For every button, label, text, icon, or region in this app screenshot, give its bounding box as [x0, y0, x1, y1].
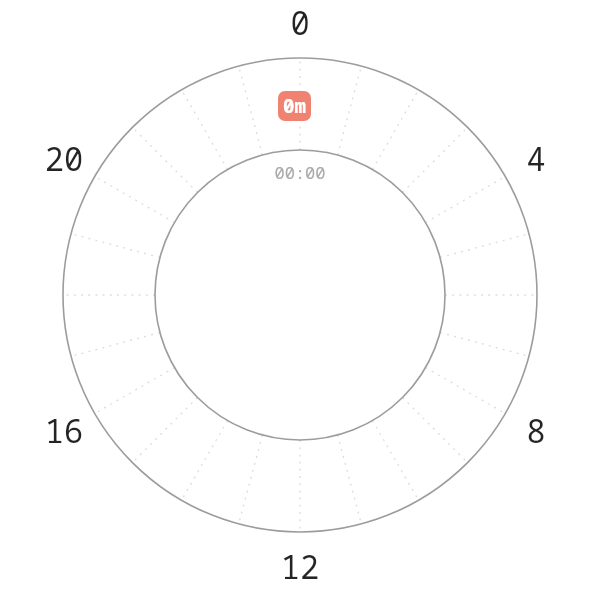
button[interactable]: 00:00	[240, 161, 360, 184]
staticText: 8	[491, 409, 581, 453]
button[interactable]: 4	[491, 137, 581, 181]
staticText: 4	[491, 137, 581, 181]
staticText: 0m	[283, 93, 306, 119]
staticText: 16	[19, 409, 109, 453]
staticText: 00:00	[240, 161, 360, 184]
button[interactable]: 20	[19, 137, 109, 181]
staticText: 20	[19, 137, 109, 181]
button[interactable]: 12	[255, 545, 345, 589]
button[interactable]: Elapsed time 0 minutes	[278, 91, 311, 121]
staticText: 12	[255, 545, 345, 589]
button[interactable]: 0	[255, 1, 345, 45]
button[interactable]: 8	[491, 409, 581, 453]
button[interactable]: 16	[19, 409, 109, 453]
staticText: 0	[255, 1, 345, 45]
